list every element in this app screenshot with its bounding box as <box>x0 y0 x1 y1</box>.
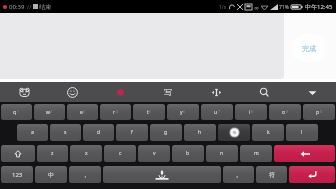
button[interactable]: a <box>17 124 48 141</box>
button[interactable]: z <box>37 145 68 162</box>
staticText: 中午12:45 <box>305 3 333 11</box>
staticText: e <box>80 109 83 116</box>
button[interactable]: Emoji <box>48 82 96 102</box>
button[interactable]: 符 <box>256 166 287 183</box>
staticText: u <box>214 109 218 116</box>
staticText: k <box>267 129 270 136</box>
staticText: 71% <box>279 4 289 11</box>
staticText: w <box>46 109 50 116</box>
button[interactable]: p <box>303 104 335 120</box>
button[interactable]: u <box>201 104 233 120</box>
staticText: ∞ <box>254 4 259 11</box>
button[interactable]: Shift <box>1 145 35 162</box>
staticText: 8 <box>251 109 254 114</box>
button[interactable]: 。 <box>223 166 254 183</box>
staticText: x <box>85 150 88 157</box>
button[interactable]: Hide keyboard <box>288 82 336 102</box>
button[interactable]: h <box>184 124 216 141</box>
staticText: p <box>316 109 320 116</box>
staticText: l <box>301 129 303 136</box>
button[interactable]: Voice input <box>96 82 144 102</box>
staticText: a <box>31 129 34 136</box>
button[interactable]: l <box>286 124 318 141</box>
staticText: 9 <box>286 109 289 114</box>
button[interactable]: m <box>240 145 272 162</box>
staticText: c <box>119 150 122 157</box>
staticText: ， <box>82 171 88 179</box>
button[interactable]: q <box>1 104 32 120</box>
button[interactable] <box>218 124 250 141</box>
button[interactable]: w <box>34 104 65 120</box>
staticText: 1/s <box>219 4 227 11</box>
button[interactable]: 中 <box>35 166 67 183</box>
staticText: v <box>153 150 156 157</box>
staticText: h <box>198 129 202 136</box>
staticText: 123 <box>12 171 23 179</box>
staticText: t <box>147 109 149 116</box>
staticText: g <box>164 129 168 136</box>
button[interactable]: 123 <box>1 166 33 183</box>
button[interactable]: Search <box>240 82 288 102</box>
button[interactable]: g <box>150 124 182 141</box>
staticText: 00:39 <box>9 3 25 11</box>
staticText: r <box>113 109 116 116</box>
staticText: m <box>254 150 259 157</box>
staticText: b <box>186 150 190 157</box>
button[interactable]: c <box>104 145 136 162</box>
button[interactable]: x <box>70 145 102 162</box>
staticText: 3 <box>83 109 86 114</box>
button[interactable]: d <box>83 124 114 141</box>
button[interactable]: n <box>206 145 238 162</box>
button[interactable]: b <box>172 145 204 162</box>
button[interactable]: ， <box>69 166 101 183</box>
button[interactable]: y <box>167 104 199 120</box>
staticText: d <box>97 129 101 136</box>
staticText: 1 <box>17 109 20 114</box>
staticText: z <box>51 150 54 157</box>
button[interactable]: k <box>252 124 284 141</box>
staticText: s <box>64 129 67 136</box>
staticText: // <box>27 3 32 11</box>
button[interactable]: Space <box>103 166 221 183</box>
staticText: 完成 <box>302 44 316 53</box>
staticText: 写 <box>164 87 172 97</box>
staticText: 符 <box>269 171 275 179</box>
staticText: 6 <box>183 109 186 114</box>
staticText: 结束 <box>39 3 51 11</box>
button[interactable]: Theme <box>0 82 48 102</box>
button[interactable]: s <box>50 124 81 141</box>
staticText: 7 <box>218 109 221 114</box>
staticText: f <box>131 129 133 136</box>
button[interactable]: i <box>235 104 267 120</box>
button[interactable]: 写 <box>144 82 192 102</box>
button[interactable]: r <box>100 104 131 120</box>
button[interactable]: Move cursor <box>192 82 240 102</box>
button[interactable]: o <box>269 104 301 120</box>
staticText: n <box>220 150 224 157</box>
button[interactable]: f <box>116 124 148 141</box>
button[interactable]: 完成 <box>284 13 336 79</box>
staticText: 4 <box>116 109 119 114</box>
button[interactable]: t <box>133 104 165 120</box>
button[interactable]: e <box>67 104 98 120</box>
staticText: 。 <box>236 171 242 179</box>
staticText: i <box>249 109 251 116</box>
staticText: 5 <box>149 109 152 114</box>
staticText: q <box>13 109 17 116</box>
button[interactable]: v <box>138 145 170 162</box>
staticText: 0 <box>320 109 323 114</box>
button[interactable]: Backspace <box>274 145 335 162</box>
staticText: 2 <box>50 109 53 114</box>
staticText: 中 <box>48 171 54 179</box>
staticText: y <box>180 109 183 116</box>
button[interactable]: Enter <box>289 166 335 183</box>
staticText: o <box>282 109 286 116</box>
